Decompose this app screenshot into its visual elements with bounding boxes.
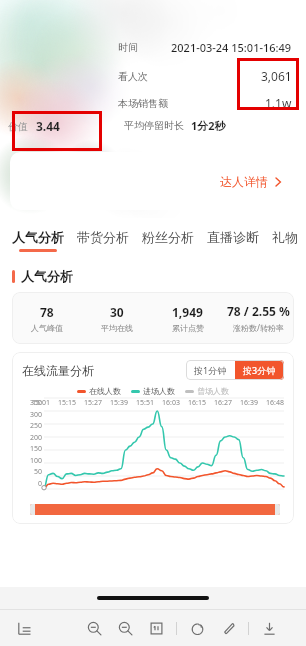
button[interactable] xyxy=(30,504,280,515)
staticText: 带货分析 xyxy=(77,229,129,245)
staticText: 按1分钟 xyxy=(194,364,227,376)
staticText: 在线人数 xyxy=(89,386,121,396)
staticText: 250 xyxy=(18,421,42,431)
button[interactable]: Layout xyxy=(12,616,36,640)
button[interactable]: Rotate xyxy=(185,616,209,640)
staticText: 16:15 xyxy=(188,398,206,408)
button[interactable]: 带货分析 xyxy=(77,218,129,256)
staticText: 平均在线 xyxy=(101,323,133,333)
button[interactable]: Zoom out xyxy=(82,616,106,640)
staticText: 曾场人数 xyxy=(197,386,229,396)
button[interactable]: 达人详情 xyxy=(10,152,296,210)
staticText: 时间 xyxy=(118,41,138,54)
staticText: 15:15 xyxy=(58,398,76,408)
staticText: 人气分析 xyxy=(21,268,73,284)
staticText: 3,061 xyxy=(261,68,292,84)
button[interactable]: 按3分钟 xyxy=(235,360,284,380)
staticText: 100 xyxy=(18,456,42,466)
button[interactable]: 粉丝分析 xyxy=(142,218,194,256)
staticText: 16:48 xyxy=(266,398,284,408)
staticText: 进场人数 xyxy=(143,386,175,396)
button[interactable]: Zoom in xyxy=(113,616,137,640)
staticText: 78 / 2.55 % xyxy=(227,303,290,319)
button[interactable]: Download xyxy=(257,616,281,640)
button[interactable]: Fit to screen xyxy=(144,616,168,640)
staticText: 150 xyxy=(18,444,42,454)
staticText: 直播诊断 xyxy=(207,229,259,245)
staticText: 本场销售额 xyxy=(118,97,168,110)
staticText: 16:27 xyxy=(214,398,232,408)
button[interactable]: 礼物 xyxy=(272,218,298,256)
button[interactable]: 78 xyxy=(12,292,294,344)
staticText: 16:39 xyxy=(240,398,258,408)
staticText: 礼物 xyxy=(272,229,298,245)
staticText: 1.1w xyxy=(265,95,292,111)
staticText: 0 xyxy=(18,479,42,489)
staticText: 涨粉数/转粉率 xyxy=(233,322,284,333)
staticText: 3.44 xyxy=(36,118,60,134)
staticText: 200 xyxy=(18,433,42,443)
staticText: 16:03 xyxy=(162,398,180,408)
staticText: 累计点赞 xyxy=(172,323,204,333)
staticText: 50 xyxy=(18,467,42,477)
staticText: 300 xyxy=(18,410,42,420)
staticText: 人气峰值 xyxy=(31,323,63,333)
staticText: 15:39 xyxy=(110,398,128,408)
staticText: 在线流量分析 xyxy=(22,363,94,378)
staticText: 人气分析 xyxy=(12,229,64,245)
staticText: 按3分钟 xyxy=(243,364,276,376)
staticText: 价值 xyxy=(8,120,28,133)
staticText: 粉丝分析 xyxy=(142,229,194,245)
button[interactable]: 人气分析 xyxy=(12,218,64,256)
staticText: 15:01 xyxy=(32,398,50,408)
button[interactable]: 直播诊断 xyxy=(207,218,259,256)
button[interactable]: 按1分钟 xyxy=(186,360,235,380)
staticText: 2021-03-24 15:01-16:49 xyxy=(171,40,292,55)
staticText: 15:27 xyxy=(84,398,102,408)
staticText: 350 xyxy=(18,398,42,408)
staticText: 30 xyxy=(110,304,124,320)
staticText: 达人详情 xyxy=(220,174,268,189)
staticText: 1分2秒 xyxy=(191,118,226,133)
staticText: 平均停留时长 xyxy=(124,119,184,132)
staticText: 15:51 xyxy=(136,398,154,408)
staticText: 78 xyxy=(40,304,54,320)
button[interactable]: Edit xyxy=(216,616,240,640)
staticText: 1,949 xyxy=(172,304,203,320)
staticText: 看人次 xyxy=(118,70,148,83)
